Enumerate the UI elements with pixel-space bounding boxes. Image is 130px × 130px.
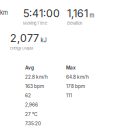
staticText: kJ (40, 37, 46, 44)
staticText: Energy Output (10, 46, 33, 50)
staticText: Max (66, 65, 76, 70)
staticText: 2,966 (25, 102, 38, 108)
staticText: 62 (25, 93, 31, 98)
staticText: km (0, 9, 8, 16)
staticText: Avg (25, 65, 34, 70)
staticText: Elevation (67, 21, 82, 26)
staticText: 1,161 (67, 7, 88, 20)
staticText: 111 (66, 93, 72, 98)
staticText: Moving Time (23, 21, 47, 26)
staticText: 22.8 km/h (25, 74, 48, 80)
staticText: 27 °C (25, 111, 37, 117)
staticText: m (89, 12, 94, 19)
staticText: 178 bpm (66, 83, 85, 89)
staticText: 2,077 (10, 32, 39, 45)
staticText: 163 bpm (25, 83, 44, 89)
staticText: 7:35:20 (25, 121, 41, 126)
staticText: 64.8 km/h (66, 74, 89, 80)
staticText: 5:41:00 (23, 7, 60, 20)
